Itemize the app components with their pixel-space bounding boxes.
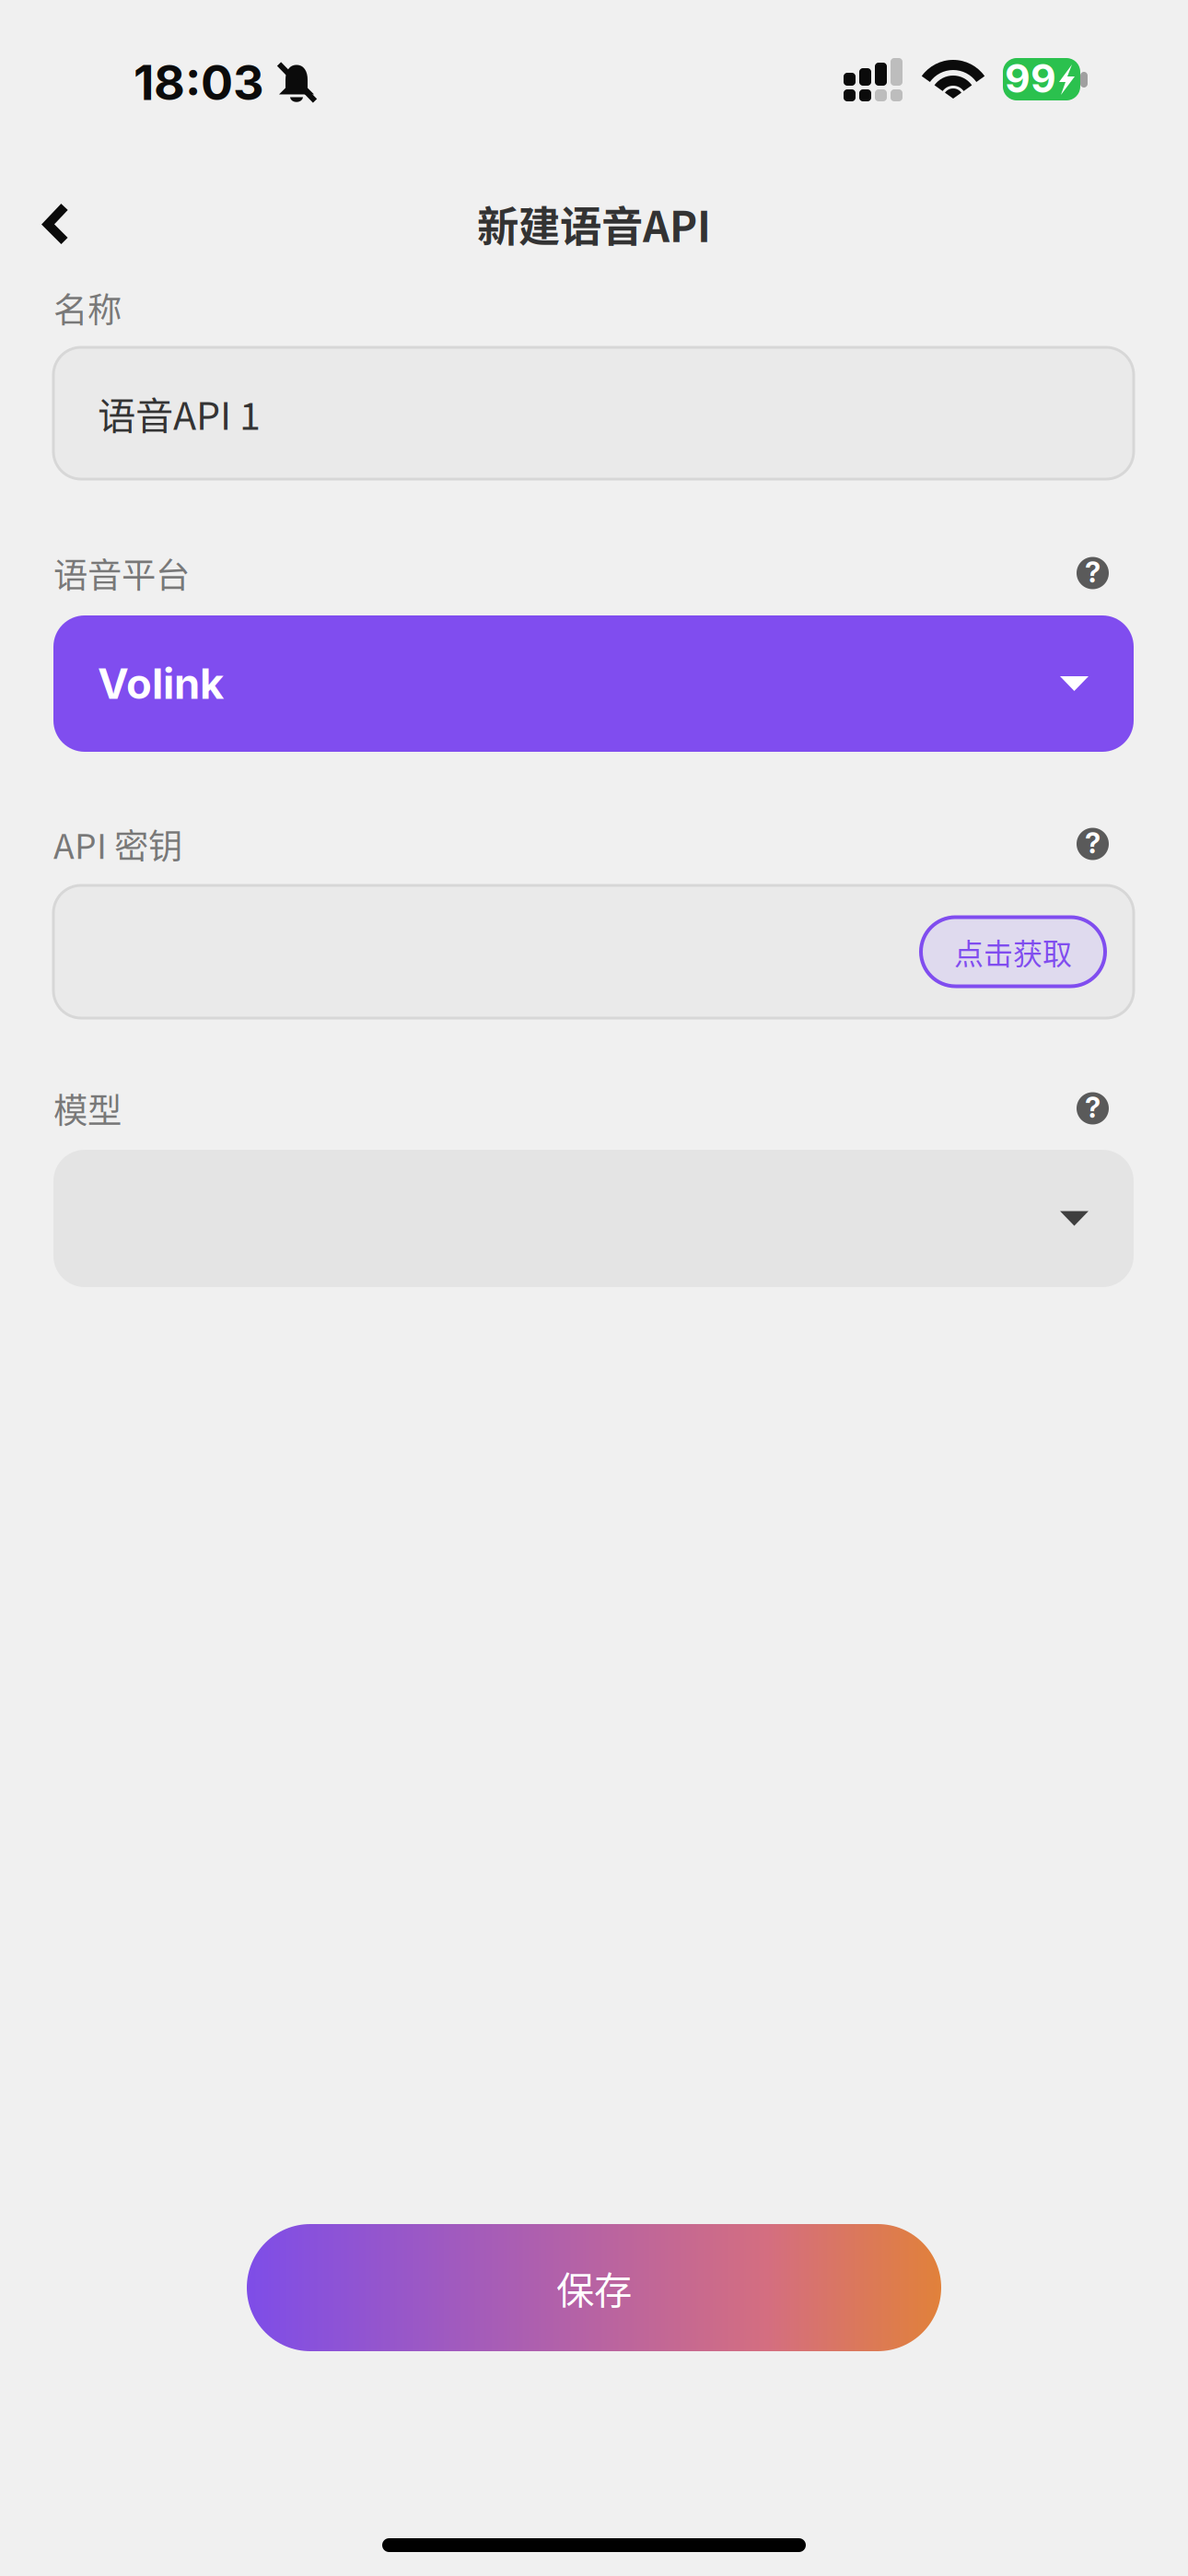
button[interactable]: 保存 bbox=[247, 2224, 941, 2351]
staticText: 语音API 1 bbox=[98, 386, 261, 441]
button[interactable]: 点击获取 bbox=[921, 917, 1105, 986]
staticText: ? bbox=[1085, 555, 1101, 589]
staticText: 模型 bbox=[53, 1083, 122, 1133]
staticText: 保存 bbox=[556, 2260, 632, 2315]
staticText: ? bbox=[1085, 1090, 1101, 1124]
button[interactable]: Help bbox=[1077, 1092, 1109, 1124]
button[interactable] bbox=[53, 1150, 1134, 1287]
staticText: 名称 bbox=[53, 283, 122, 333]
staticText: 18:03 bbox=[134, 53, 264, 111]
staticText: 点击获取 bbox=[954, 930, 1072, 973]
button[interactable]: Help bbox=[1077, 828, 1109, 860]
button[interactable]: Back bbox=[16, 181, 97, 266]
staticText: 新建语音API bbox=[477, 194, 711, 254]
staticText: API 密钥 bbox=[53, 819, 182, 869]
staticText: 语音平台 bbox=[53, 548, 190, 598]
button[interactable]: Volink bbox=[53, 615, 1134, 752]
staticText: 99 bbox=[1005, 55, 1056, 102]
staticText: Volink bbox=[98, 658, 224, 709]
button[interactable]: Help bbox=[1077, 557, 1109, 589]
staticText: ? bbox=[1085, 826, 1101, 860]
